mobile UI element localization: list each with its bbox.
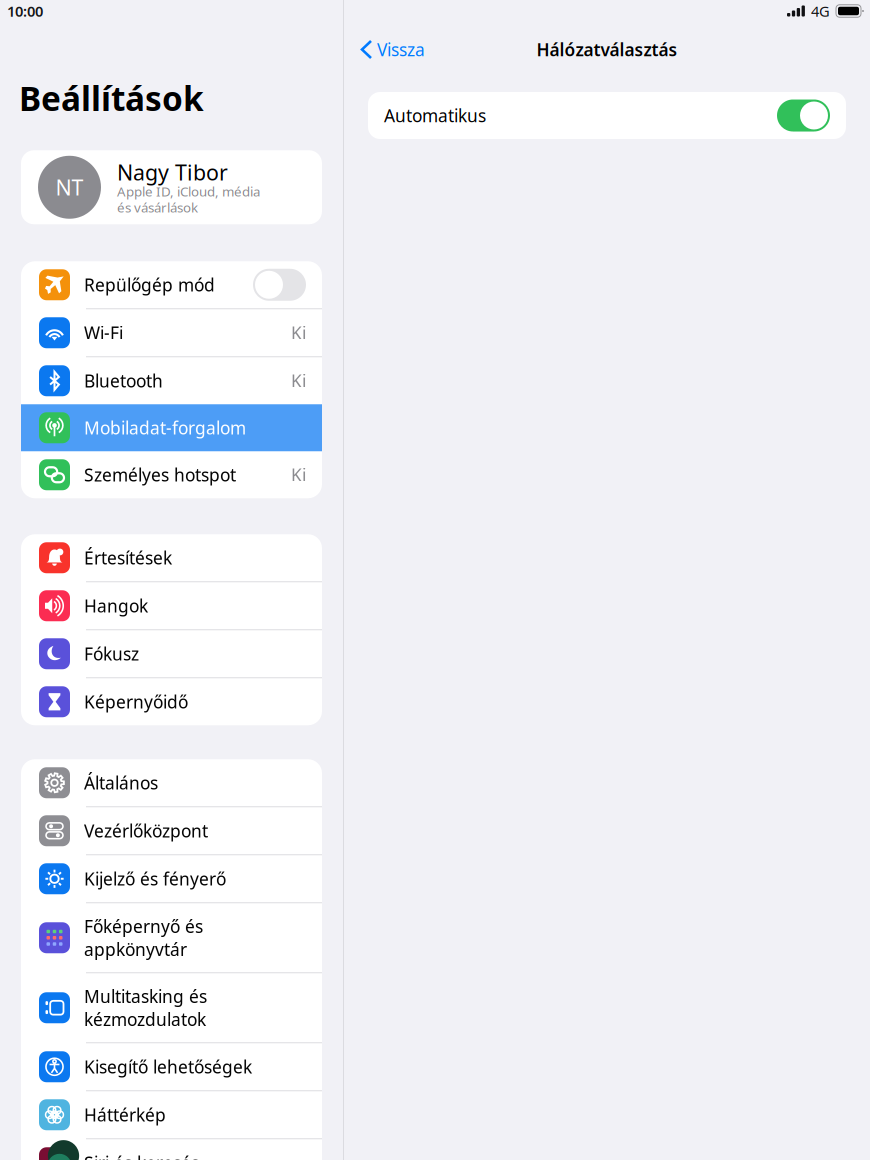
button[interactable]: Vissza	[362, 32, 425, 67]
staticText: Főképernyő és appkönyvtár	[84, 915, 203, 961]
staticText: Beállítások	[19, 76, 204, 120]
staticText: Általános	[84, 771, 158, 794]
button[interactable]: Mobiladat-forgalom	[21, 404, 322, 451]
button[interactable]: Hangok	[21, 582, 322, 629]
staticText: Wi-Fi	[84, 321, 123, 344]
staticText: és vásárlások	[117, 198, 198, 216]
staticText: Vissza	[377, 38, 425, 61]
staticText: Automatikus	[384, 104, 486, 127]
staticText: Hangok	[84, 594, 148, 617]
button[interactable]: Fókusz	[21, 630, 322, 677]
button[interactable]: Értesítések	[21, 534, 322, 581]
staticText: Multitasking és kézmozdulatok	[84, 985, 207, 1031]
staticText: Kijelző és fényerő	[84, 867, 226, 890]
button[interactable]: Bluetooth	[21, 357, 322, 404]
staticText: Képernyőidő	[84, 690, 188, 713]
staticText: Ki	[291, 463, 306, 486]
button[interactable]: Képernyőidő	[21, 678, 322, 725]
button[interactable]: Automatikus	[368, 92, 846, 139]
button[interactable]: Repülőgép mód	[21, 261, 322, 308]
button[interactable]: Háttérkép	[21, 1091, 322, 1138]
button[interactable]: NT	[21, 150, 322, 224]
staticText: Ki	[291, 369, 306, 392]
button[interactable]: Multitasking és kézmozdulatok	[21, 973, 322, 1042]
staticText: Hálózatválasztás	[536, 38, 677, 61]
button[interactable]: Személyes hotspot	[21, 451, 322, 498]
button[interactable]: Wi-Fi	[21, 309, 322, 356]
button[interactable]: Kisegítő lehetőségek	[21, 1043, 322, 1090]
staticText: NT	[55, 173, 83, 201]
staticText: 4G	[811, 1, 830, 21]
staticText: Vezérlőközpont	[84, 819, 208, 842]
staticText: 10:00	[7, 1, 43, 21]
staticText: Kisegítő lehetőségek	[84, 1055, 252, 1078]
button[interactable]: Főképernyő és appkönyvtár	[21, 903, 322, 972]
staticText: Apple ID, iCloud, média	[117, 182, 260, 200]
staticText: Személyes hotspot	[84, 463, 236, 486]
staticText: Fókusz	[84, 642, 139, 665]
staticText: Repülőgép mód	[84, 273, 215, 296]
staticText: Bluetooth	[84, 369, 163, 392]
button[interactable]: Kijelző és fényerő	[21, 855, 322, 902]
button[interactable]: Siri és keresés	[21, 1139, 322, 1160]
staticText: Siri és keresés	[84, 1151, 199, 1160]
button[interactable]: Általános	[21, 759, 322, 806]
staticText: Ki	[291, 321, 306, 344]
staticText: Nagy Tibor	[117, 158, 228, 186]
staticText: Értesítések	[84, 546, 172, 569]
staticText: Háttérkép	[84, 1103, 166, 1126]
button[interactable]: Vezérlőközpont	[21, 807, 322, 854]
staticText: Mobiladat-forgalom	[84, 416, 246, 439]
